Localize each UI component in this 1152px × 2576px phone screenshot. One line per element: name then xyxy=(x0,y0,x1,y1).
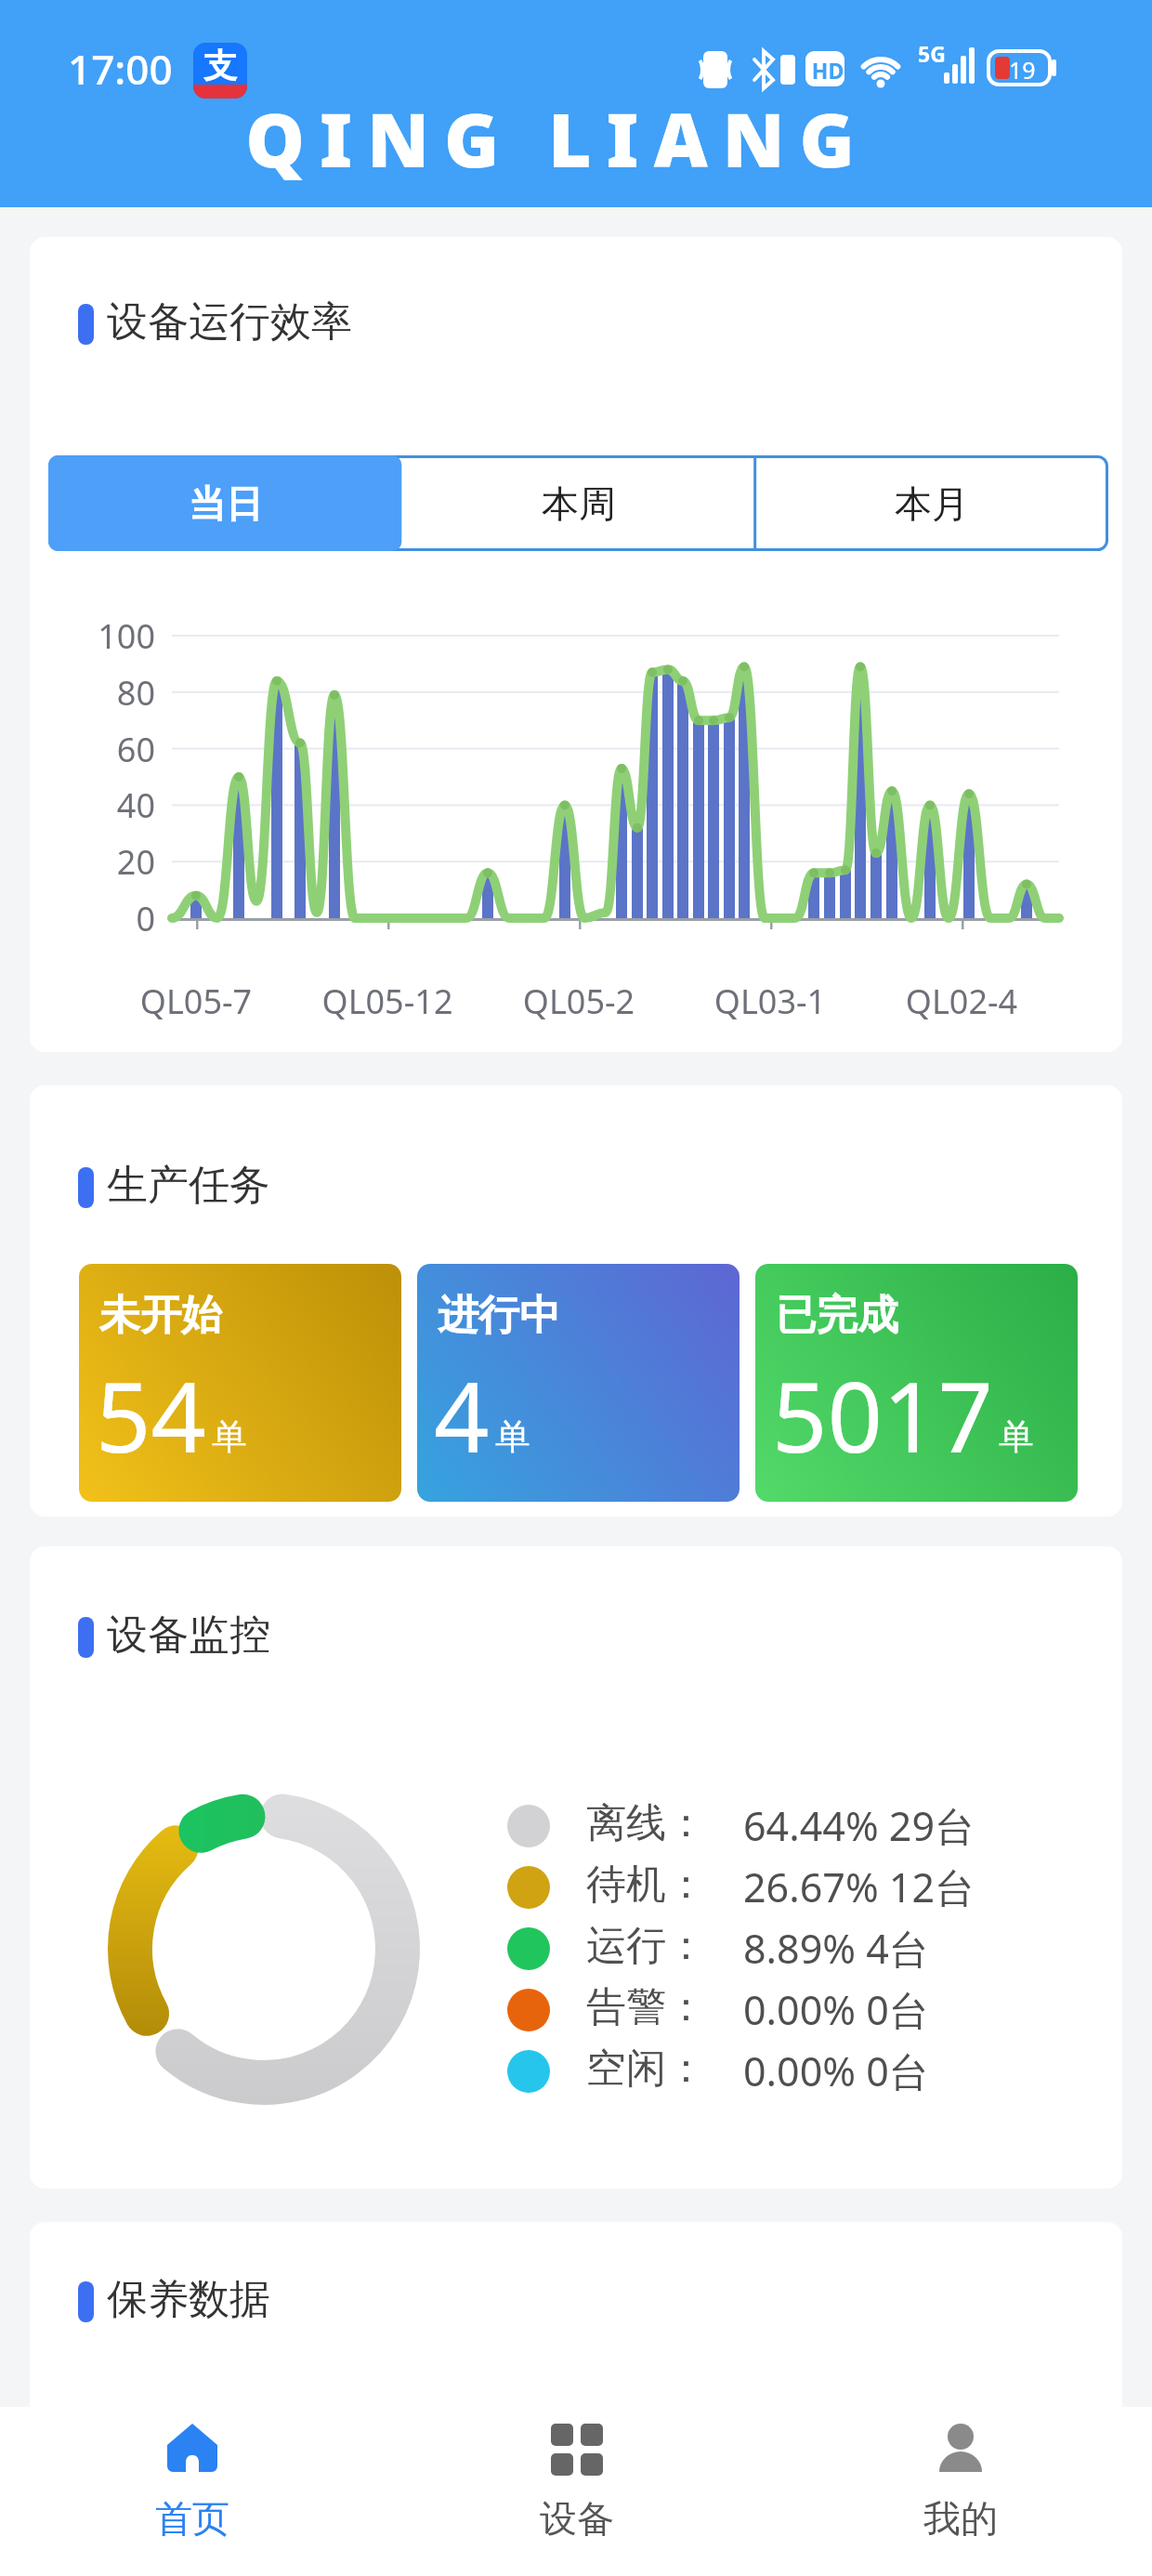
staticText: 首页 xyxy=(155,2495,229,2542)
staticText: QL03-1 xyxy=(668,979,872,1024)
staticText: 60 xyxy=(81,727,155,772)
staticText: 进行中 xyxy=(438,1290,560,1341)
button[interactable]: 本月 xyxy=(755,455,1108,551)
staticText: 设备运行效率 xyxy=(107,296,352,348)
staticText: 设备 xyxy=(540,2495,614,2542)
staticText: 当日 xyxy=(189,480,263,527)
staticText: 已完成 xyxy=(776,1290,898,1341)
staticText: 本月 xyxy=(895,480,969,527)
staticText: 5G xyxy=(918,39,946,68)
button[interactable]: 已完成 xyxy=(755,1264,1078,1502)
staticText: 8.89% 4台 xyxy=(743,1921,929,1976)
staticText: 100 xyxy=(81,613,155,659)
staticText: 运行： xyxy=(586,1921,706,1971)
staticText: 空闲： xyxy=(586,2044,706,2094)
staticText: 本周 xyxy=(542,480,616,527)
staticText: HD xyxy=(808,56,847,85)
staticText: 64.44% 29台 xyxy=(743,1798,975,1853)
staticText: 单 xyxy=(495,1414,530,1459)
button[interactable]: 我的 xyxy=(768,2407,1152,2576)
staticText: 0 xyxy=(81,896,155,941)
staticText: 5017 xyxy=(772,1349,993,1481)
staticText: 54 xyxy=(96,1349,206,1481)
button[interactable]: 本周 xyxy=(402,455,755,551)
staticText: 离线： xyxy=(586,1798,706,1848)
button[interactable]: 首页 xyxy=(0,2407,385,2576)
staticText: QING LIANG xyxy=(0,87,1133,189)
staticText: 我的 xyxy=(923,2495,998,2542)
button[interactable]: 设备 xyxy=(385,2407,768,2576)
staticText: 26.67% 12台 xyxy=(743,1860,975,1914)
staticText: 单 xyxy=(999,1414,1034,1459)
button[interactable]: 进行中 xyxy=(417,1264,740,1502)
staticText: 未开始 xyxy=(99,1290,222,1341)
staticText: 4 xyxy=(434,1349,490,1481)
staticText: QL05-2 xyxy=(477,979,681,1024)
staticText: 待机： xyxy=(586,1860,706,1910)
staticText: 告警： xyxy=(586,1982,706,2032)
staticText: 0.00% 0台 xyxy=(743,1982,929,2037)
staticText: 设备监控 xyxy=(107,1610,270,1661)
staticText: 20 xyxy=(81,839,155,885)
staticText: 0.00% 0台 xyxy=(743,2044,929,2098)
staticText: QL05-12 xyxy=(285,979,490,1024)
staticText: 19 xyxy=(1009,54,1036,85)
staticText: 单 xyxy=(212,1414,247,1459)
staticText: 17:00 xyxy=(68,41,173,97)
button[interactable]: 未开始 xyxy=(79,1264,401,1502)
staticText: 80 xyxy=(81,670,155,716)
staticText: QL02-4 xyxy=(859,979,1064,1024)
staticText: 支 xyxy=(203,45,237,86)
staticText: 生产任务 xyxy=(107,1160,270,1211)
staticText: 40 xyxy=(81,782,155,828)
staticText: QL05-7 xyxy=(94,979,298,1024)
staticText: 保养数据 xyxy=(107,2274,270,2325)
button[interactable]: 当日 xyxy=(48,455,402,551)
